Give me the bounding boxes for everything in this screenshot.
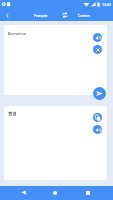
staticText: 환영 bbox=[8, 111, 17, 116]
button[interactable]: 환영 bbox=[4, 106, 107, 180]
button[interactable]: Back bbox=[18, 187, 29, 198]
button[interactable]: Clear bbox=[93, 45, 102, 54]
staticText: Bienvenue bbox=[8, 31, 26, 36]
staticText: Coréen bbox=[78, 13, 90, 18]
button[interactable]: Translate bbox=[93, 87, 106, 100]
button[interactable]: Bienvenue bbox=[4, 25, 107, 95]
button[interactable]: Copy bbox=[93, 113, 102, 122]
button[interactable]: Back bbox=[1, 9, 13, 21]
button[interactable]: Listen bbox=[93, 125, 102, 134]
button[interactable]: Swap languages bbox=[59, 9, 71, 21]
button[interactable]: Coréen bbox=[72, 9, 95, 21]
button[interactable]: Recent apps bbox=[82, 187, 93, 198]
button[interactable]: Listen bbox=[93, 33, 102, 42]
staticText: Français bbox=[34, 13, 48, 18]
button[interactable]: Home bbox=[49, 187, 60, 198]
button[interactable]: Français bbox=[27, 9, 54, 21]
staticText: 13:05 bbox=[102, 2, 112, 7]
